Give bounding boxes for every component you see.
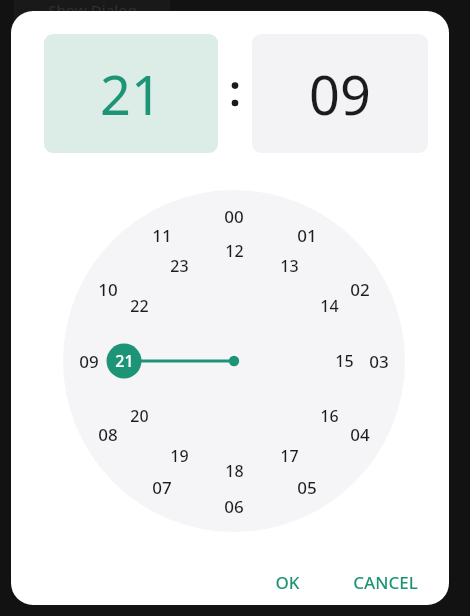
staticText: 00: [224, 205, 244, 228]
button[interactable]: OK: [262, 564, 313, 601]
staticText: OK: [275, 571, 300, 594]
staticText: 13: [280, 255, 299, 277]
staticText: 20: [130, 405, 149, 427]
button[interactable]: 09: [252, 34, 428, 153]
staticText: 17: [280, 445, 299, 467]
button[interactable]: Show Dialog: [14, 0, 170, 28]
staticText: 09: [79, 350, 99, 373]
staticText: Show Dialog: [48, 0, 137, 20]
staticText: 14: [320, 295, 339, 317]
button[interactable]: 21: [44, 34, 218, 153]
staticText: 23: [170, 255, 189, 277]
staticText: 11: [152, 224, 172, 247]
staticText: 05: [297, 476, 317, 499]
staticText: 02: [350, 278, 370, 301]
staticText: 12: [225, 240, 244, 262]
staticText: 19: [170, 445, 189, 467]
staticText: 10: [98, 278, 118, 301]
button[interactable]: Clock dial, selected hour 21: [63, 190, 405, 532]
button[interactable]: CANCEL: [340, 564, 431, 601]
staticText: 08: [98, 423, 118, 446]
staticText: 15: [335, 350, 354, 372]
staticText: 06: [224, 495, 244, 518]
staticText: 21: [100, 57, 162, 131]
staticText: 22: [130, 295, 149, 317]
staticText: 18: [225, 460, 244, 482]
staticText: 07: [152, 476, 172, 499]
staticText: 01: [297, 224, 317, 247]
staticText: 03: [369, 350, 389, 373]
staticText: CANCEL: [353, 571, 418, 594]
staticText: 09: [309, 57, 371, 131]
staticText: 16: [320, 405, 339, 427]
staticText: 04: [350, 423, 370, 446]
staticText: 21: [115, 350, 134, 372]
